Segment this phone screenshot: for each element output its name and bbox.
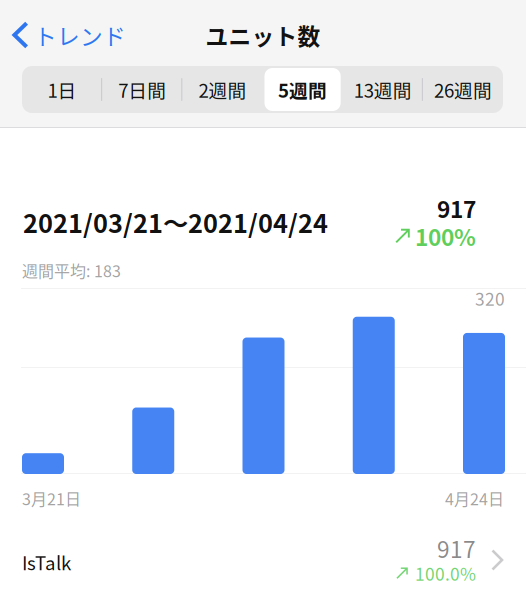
staticText: 100% <box>415 220 476 252</box>
staticText: 13週間 <box>354 76 412 103</box>
staticText: 4月24日 <box>445 487 504 510</box>
button[interactable]: 7日間 <box>102 66 182 113</box>
staticText: 7日間 <box>118 76 166 103</box>
button[interactable]: 2週間 <box>182 66 262 113</box>
button[interactable]: 1日 <box>22 66 102 113</box>
staticText: 1日 <box>48 76 77 103</box>
staticText: ユニット数 <box>205 19 320 51</box>
staticText: 26週間 <box>434 76 492 103</box>
button[interactable]: トレンド <box>0 11 134 59</box>
button[interactable]: 5週間 <box>262 66 343 113</box>
staticText: 320 <box>475 286 505 310</box>
staticText: 5週間 <box>278 76 327 103</box>
staticText: トレンド <box>34 19 126 51</box>
staticText: 2週間 <box>198 76 246 103</box>
button[interactable]: 13週間 <box>343 66 423 113</box>
staticText: 917 <box>437 192 476 224</box>
staticText: 週間平均: 183 <box>22 259 121 282</box>
staticText: 100.0% <box>415 561 476 585</box>
button[interactable]: IsTalk <box>0 0 526 600</box>
staticText: 3月21日 <box>22 487 81 510</box>
staticText: IsTalk <box>22 549 71 575</box>
staticText: 917 <box>437 532 476 564</box>
button[interactable]: 26週間 <box>423 66 503 113</box>
staticText: 2021/03/21〜2021/04/24 <box>23 204 328 240</box>
